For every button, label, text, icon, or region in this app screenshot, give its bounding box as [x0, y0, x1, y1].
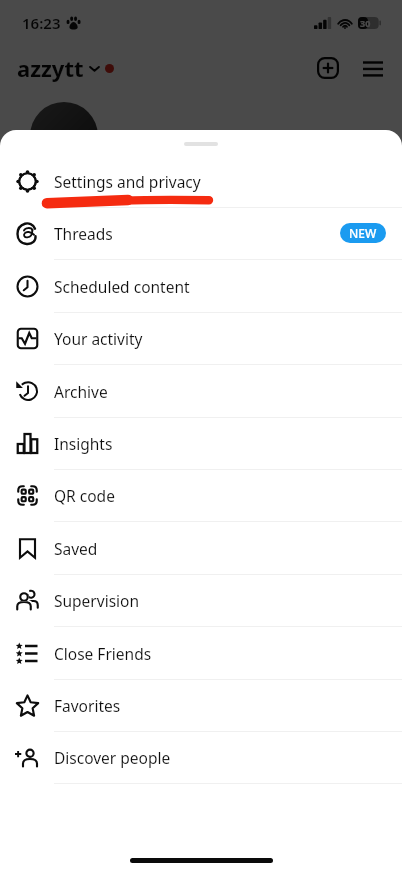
- staticText: Discover people: [54, 747, 171, 768]
- staticText: Your activity: [54, 328, 143, 349]
- staticText: QR code: [54, 485, 115, 506]
- staticText: Threads: [54, 223, 113, 244]
- staticText: Supervision: [54, 590, 140, 611]
- button[interactable]: Supervision: [0, 574, 402, 626]
- button[interactable]: Saved: [0, 522, 402, 574]
- staticText: NEW: [349, 225, 377, 241]
- staticText: Archive: [54, 381, 108, 402]
- button[interactable]: Archive: [0, 365, 402, 417]
- button[interactable]: New post: [311, 51, 345, 85]
- staticText: Saved: [54, 538, 98, 559]
- staticText: 16:23: [22, 13, 61, 33]
- staticText: azzytt: [17, 53, 84, 83]
- button[interactable]: Scheduled content: [0, 260, 402, 312]
- staticText: Scheduled content: [54, 276, 190, 297]
- staticText: Favorites: [54, 695, 121, 716]
- staticText: 30: [360, 17, 371, 29]
- button[interactable]: Threads: [0, 207, 402, 259]
- button[interactable]: QR code: [0, 469, 402, 521]
- button[interactable]: Settings and privacy: [0, 155, 402, 207]
- staticText: Close Friends: [54, 643, 152, 664]
- staticText: Insights: [54, 433, 113, 454]
- button[interactable]: Menu: [356, 51, 390, 85]
- staticText: Settings and privacy: [54, 171, 201, 192]
- button[interactable]: Favorites: [0, 679, 402, 731]
- button[interactable]: Your activity: [0, 312, 402, 364]
- button[interactable]: Insights: [0, 417, 402, 469]
- button[interactable]: Discover people: [0, 731, 402, 783]
- button[interactable]: Close Friends: [0, 627, 402, 679]
